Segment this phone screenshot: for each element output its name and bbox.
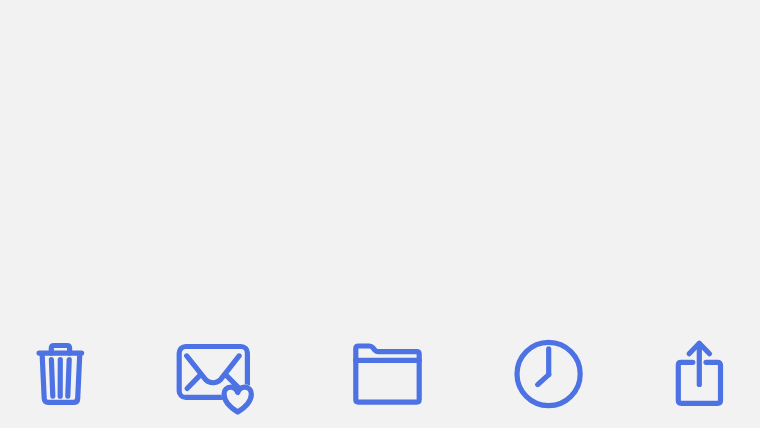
button[interactable]: Share: [608, 330, 760, 428]
button[interactable]: Delete: [0, 330, 152, 428]
button[interactable]: Folder: [304, 330, 456, 428]
button[interactable]: Recent: [456, 330, 608, 428]
button[interactable]: Favourite mail: [152, 330, 304, 428]
